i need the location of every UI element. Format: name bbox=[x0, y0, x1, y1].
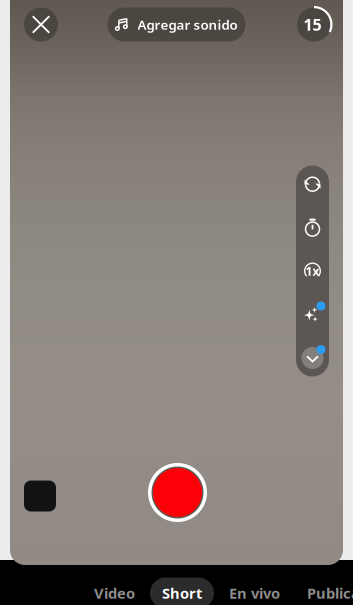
button[interactable]: Agregar sonido bbox=[107, 7, 245, 41]
staticText: Publicación bbox=[307, 583, 353, 603]
button[interactable]: Galería bbox=[24, 480, 56, 511]
staticText: 15 bbox=[303, 14, 321, 35]
button[interactable]: Grabar bbox=[148, 463, 207, 522]
staticText: Agregar sonido bbox=[137, 16, 237, 33]
button[interactable]: Temporizador bbox=[295, 209, 329, 245]
button[interactable]: Short bbox=[150, 577, 214, 605]
button[interactable]: Video bbox=[82, 577, 147, 605]
staticText: En vivo bbox=[229, 583, 280, 603]
button[interactable]: Cambiar cámara bbox=[295, 166, 329, 202]
staticText: Short bbox=[162, 583, 202, 603]
button[interactable]: En vivo bbox=[217, 577, 292, 605]
button[interactable]: Más opciones bbox=[295, 340, 329, 376]
button[interactable]: Velocidad bbox=[295, 253, 329, 289]
staticText: Video bbox=[94, 583, 135, 603]
button[interactable]: Efectos bbox=[295, 296, 329, 332]
button[interactable]: Publicación bbox=[295, 577, 353, 605]
button[interactable]: Duración 15 segundos bbox=[295, 5, 333, 43]
staticText: 1x bbox=[305, 263, 319, 279]
button[interactable]: Cerrar bbox=[24, 7, 58, 41]
